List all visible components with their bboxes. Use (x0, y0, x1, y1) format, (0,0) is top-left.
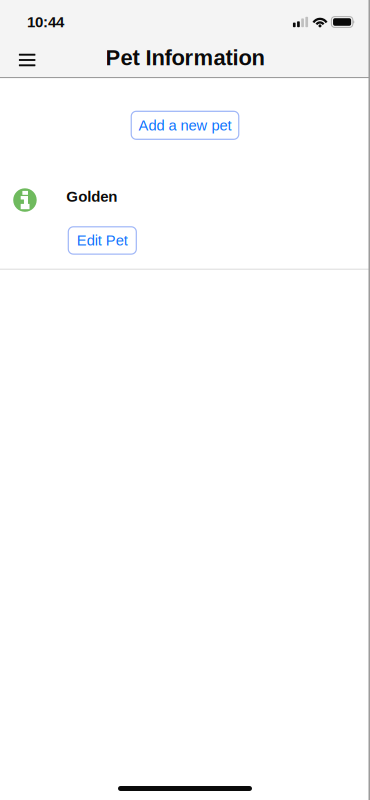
button[interactable]: Add a new pet (131, 111, 239, 139)
staticText: Add a new pet (138, 117, 231, 133)
staticText: Edit Pet (77, 232, 128, 249)
staticText: Golden (66, 188, 117, 205)
button[interactable]: Edit Pet (68, 227, 136, 254)
staticText: 10:44 (27, 14, 64, 30)
button[interactable]: Menu (9, 39, 45, 76)
staticText: Pet Information (105, 45, 264, 70)
